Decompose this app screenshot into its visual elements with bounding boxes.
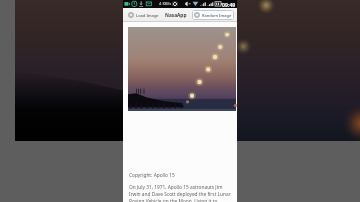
staticText: Random Image: [202, 13, 232, 18]
staticText: NasaApp: [165, 12, 187, 19]
button[interactable]: Random Image: [192, 10, 234, 20]
button[interactable]: Load Image: [126, 10, 161, 20]
staticText: Copyright: Apollo 15: [129, 172, 175, 179]
staticText: On July 31, 1971, Apollo 15 astronauts J…: [129, 184, 233, 202]
staticText: 09:49: [222, 1, 236, 8]
staticText: Load Image: [136, 13, 159, 18]
staticText: 4 KB/s: [159, 1, 172, 7]
